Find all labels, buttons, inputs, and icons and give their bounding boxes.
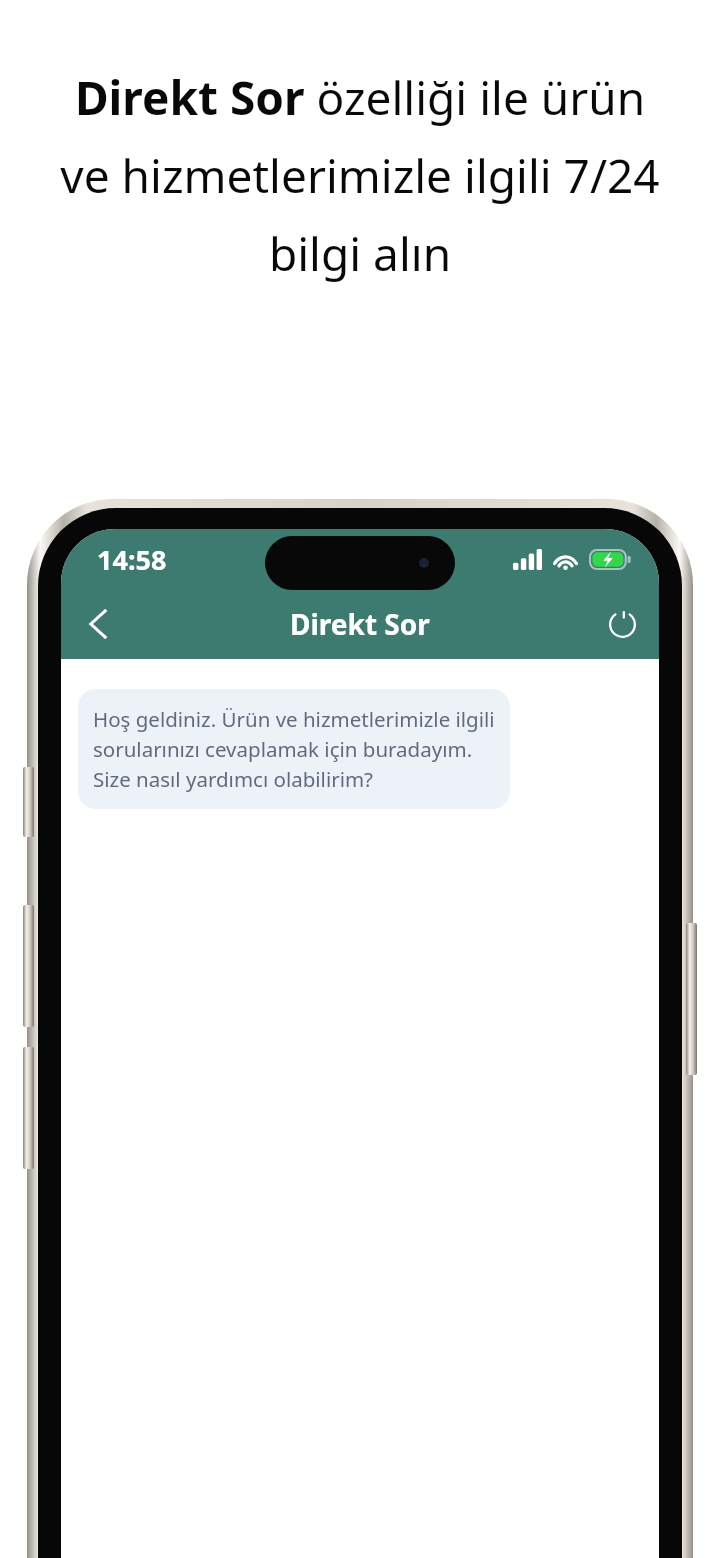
button[interactable]: Refresh	[585, 589, 659, 659]
button[interactable]: Back	[61, 589, 135, 659]
staticText: Direkt Sor özelliği ile ürün ve hizmetle…	[58, 66, 662, 285]
staticText: Direkt Sor	[290, 605, 430, 643]
staticText: Hoş geldiniz. Ürün ve hizmetlerimizle il…	[93, 705, 495, 793]
staticText: 14:58	[97, 541, 167, 578]
button[interactable]: Hoş geldiniz. Ürün ve hizmetlerimizle il…	[78, 689, 510, 809]
